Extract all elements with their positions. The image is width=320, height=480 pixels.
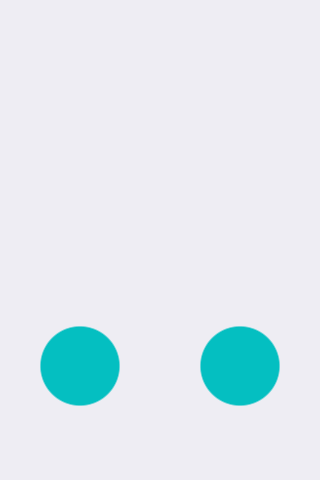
- button[interactable]: Right action: [200, 326, 280, 406]
- button[interactable]: Left action: [40, 326, 120, 406]
